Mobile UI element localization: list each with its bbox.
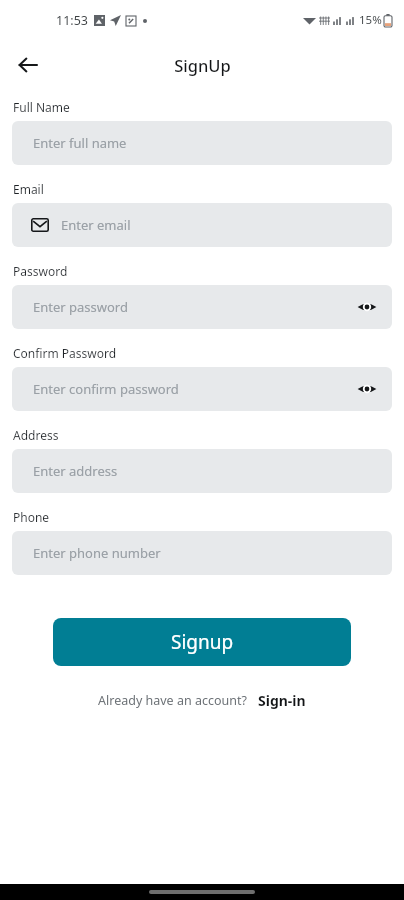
staticText: SignUp <box>174 54 231 76</box>
staticText: Sign-in <box>258 691 306 710</box>
staticText: Full Name <box>13 99 70 115</box>
staticText: Phone <box>13 509 50 525</box>
staticText: Enter confirm password <box>33 380 354 398</box>
staticText: Address <box>13 427 59 443</box>
button[interactable]: Toggle password visibility <box>354 294 380 320</box>
staticText: Email <box>13 181 44 197</box>
staticText: Enter phone number <box>33 544 380 562</box>
staticText: Enter password <box>33 298 354 316</box>
button[interactable]: Toggle password visibility <box>354 376 380 402</box>
button[interactable]: Enter password <box>12 285 392 329</box>
staticText: Signup <box>171 629 234 655</box>
staticText: Confirm Password <box>13 345 117 361</box>
staticText: Password <box>13 263 68 279</box>
staticText: 15% <box>359 12 382 28</box>
button[interactable]: Sign-in <box>258 691 306 710</box>
button[interactable]: Enter email <box>12 203 392 247</box>
button[interactable]: Back <box>11 48 45 82</box>
button[interactable]: Enter phone number <box>12 531 392 575</box>
staticText: Enter address <box>33 462 380 480</box>
button[interactable]: Enter address <box>12 449 392 493</box>
staticText: Already have an account? <box>98 692 247 709</box>
staticText: Enter full name <box>33 134 380 152</box>
staticText: Enter email <box>61 216 380 234</box>
button[interactable]: Enter confirm password <box>12 367 392 411</box>
staticText: 11:53 <box>56 12 88 29</box>
button[interactable]: Signup <box>53 618 351 666</box>
button[interactable]: Enter full name <box>12 121 392 165</box>
